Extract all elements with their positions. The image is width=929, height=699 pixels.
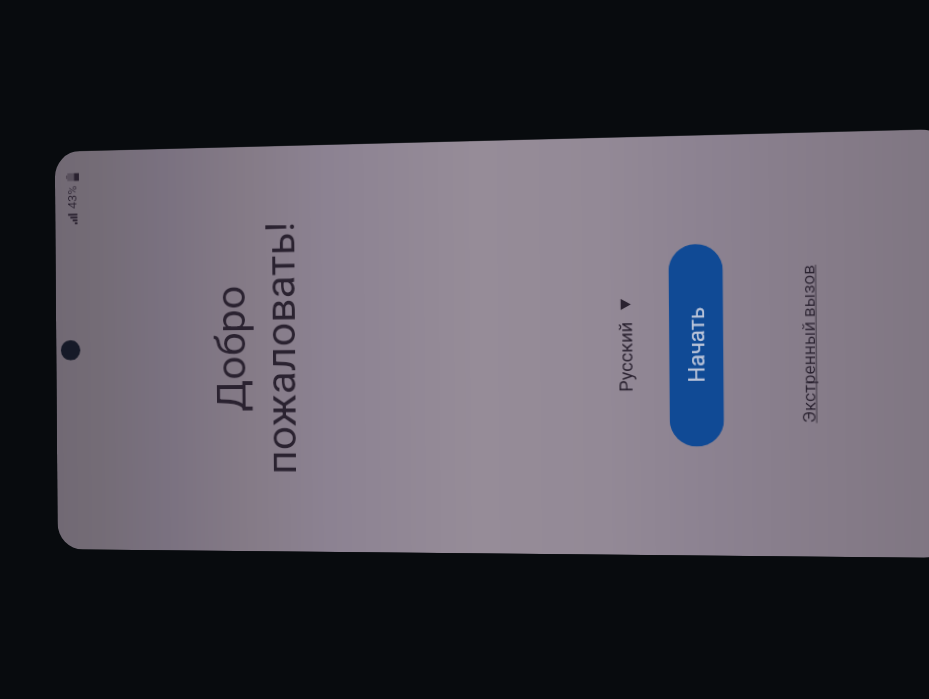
staticText: 43% bbox=[65, 185, 79, 209]
button[interactable]: Начать bbox=[668, 244, 724, 447]
staticText: Русский bbox=[615, 321, 637, 392]
staticText: Экстренный вызов bbox=[798, 265, 820, 423]
button[interactable]: Экстренный вызов bbox=[791, 258, 826, 429]
staticText: Добро пожаловать! bbox=[206, 221, 307, 475]
staticText: Начать bbox=[683, 307, 710, 382]
button[interactable]: Русский bbox=[608, 293, 643, 398]
